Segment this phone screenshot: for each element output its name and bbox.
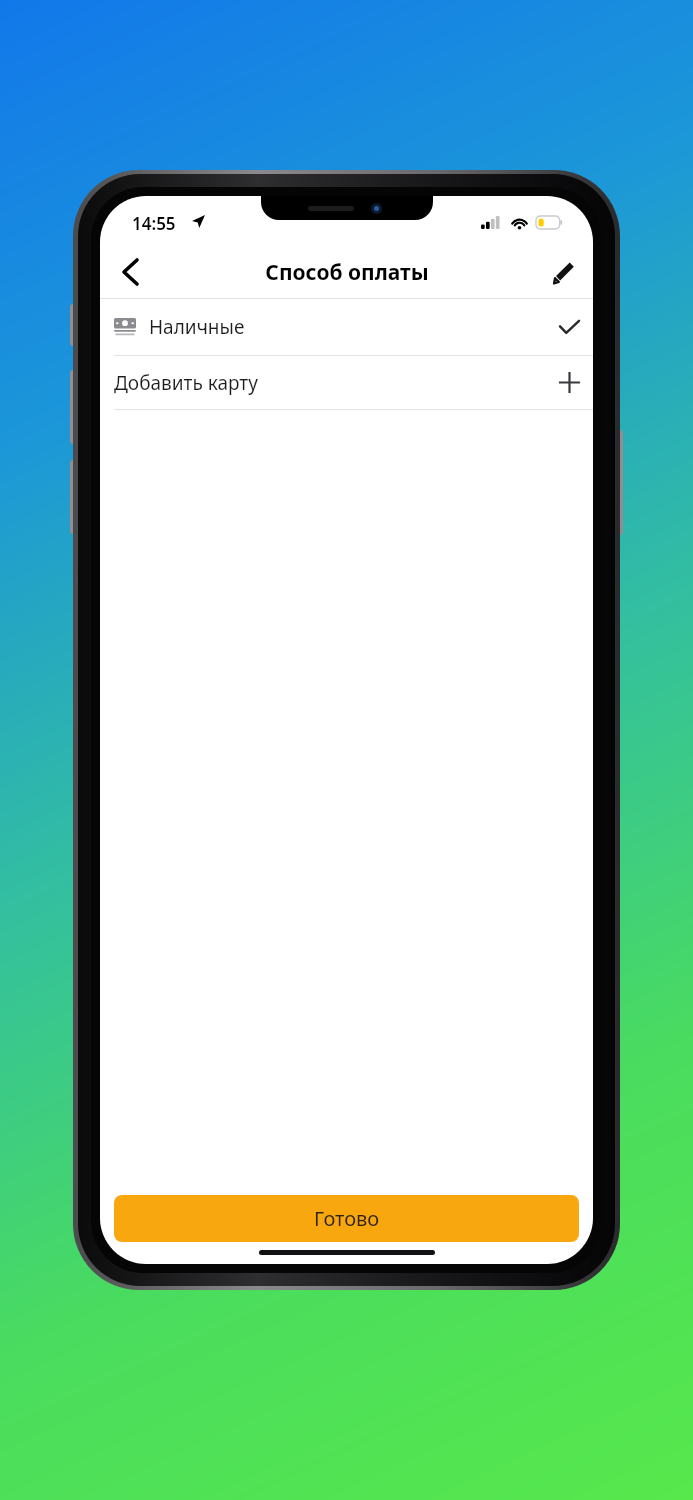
staticText: Готово xyxy=(314,1205,380,1232)
staticText: Добавить карту xyxy=(114,370,258,396)
staticText: 14:55 xyxy=(132,212,176,235)
staticText: Наличные xyxy=(149,314,245,340)
button[interactable]: Edit xyxy=(539,248,587,296)
button[interactable]: Готово xyxy=(114,1195,579,1242)
staticText: Способ оплаты xyxy=(265,258,429,287)
button[interactable]: Back xyxy=(106,248,154,296)
button[interactable]: Наличные xyxy=(100,299,593,355)
button[interactable]: Добавить карту xyxy=(100,356,593,409)
